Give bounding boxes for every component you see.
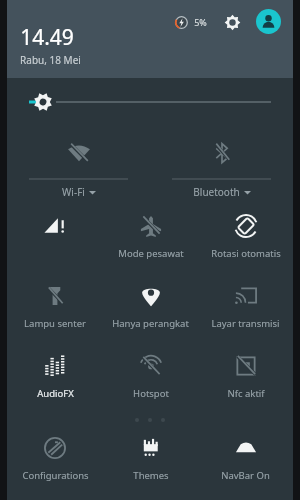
button[interactable]: Rotasi otomatis — [198, 204, 293, 274]
button[interactable]: Mode pesawat — [103, 204, 198, 274]
button[interactable]: Themes — [103, 426, 198, 488]
button[interactable]: Wi-Fi — [7, 126, 150, 204]
button[interactable]: NavBar On — [198, 426, 293, 488]
staticText: Rabu, 18 Mei — [20, 53, 81, 67]
staticText: Rotasi otomatis — [211, 247, 281, 260]
button[interactable]: Layar transmisi — [198, 274, 293, 344]
button[interactable]: User — [256, 9, 281, 34]
staticText: Themes — [133, 469, 169, 482]
button[interactable]: Battery charging — [170, 11, 192, 33]
staticText: Wi-Fi — [62, 185, 85, 199]
staticText: Nfc aktif — [227, 387, 265, 400]
staticText: 14.49 — [20, 23, 74, 52]
staticText: Bluetooth — [193, 185, 240, 199]
button[interactable]: Mobile signal — [7, 204, 103, 274]
button[interactable]: AudioFX — [7, 344, 103, 414]
staticText: Hotspot — [133, 387, 169, 400]
staticText: Hanya perangkat — [112, 317, 189, 330]
staticText: Mode pesawat — [118, 247, 184, 260]
button[interactable]: Configurations — [7, 426, 103, 488]
button[interactable]: Lampu senter — [7, 274, 103, 344]
button[interactable]: Brightness — [7, 78, 293, 126]
staticText: Configurations — [22, 469, 89, 482]
button[interactable]: Settings — [220, 10, 244, 34]
staticText: AudioFX — [37, 387, 74, 400]
staticText: NavBar On — [221, 469, 270, 482]
button[interactable]: Hotspot — [103, 344, 198, 414]
staticText: Layar transmisi — [211, 317, 280, 330]
button[interactable]: Nfc aktif — [198, 344, 293, 414]
staticText: 5% — [194, 16, 207, 28]
button[interactable]: Bluetooth — [150, 126, 293, 204]
staticText: Lampu senter — [24, 317, 86, 330]
button[interactable]: Hanya perangkat — [103, 274, 198, 344]
